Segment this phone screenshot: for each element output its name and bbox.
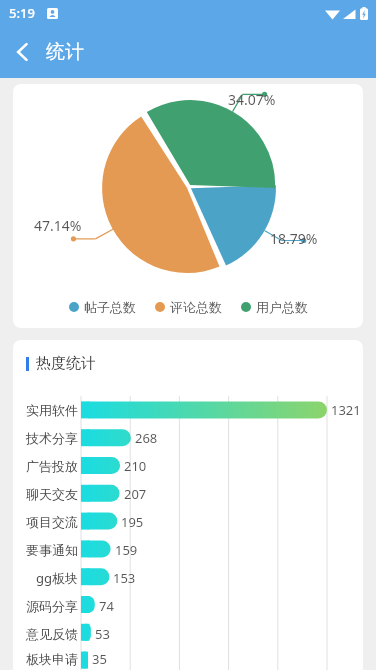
staticText: 用户总数 (256, 299, 308, 315)
button[interactable]: 用户总数 (239, 297, 310, 317)
staticText: 热度统计 (36, 354, 96, 373)
staticText: 帖子总数 (84, 299, 136, 315)
staticText: 53 (95, 625, 110, 643)
staticText: 要事通知 (13, 542, 78, 558)
staticText: 18.79% (270, 229, 318, 248)
staticText: 34.07% (228, 90, 276, 109)
staticText: 源码分享 (13, 598, 78, 614)
staticText: 47.14% (34, 216, 82, 235)
other: Wi-Fi (325, 8, 340, 20)
staticText: 实用软件 (13, 402, 78, 418)
other: App notification (47, 8, 58, 19)
button[interactable]: Back (0, 29, 46, 75)
staticText: 268 (135, 429, 158, 447)
staticText: 项目交流 (13, 514, 78, 530)
staticText: 195 (121, 513, 144, 531)
staticText: 意见反馈 (13, 626, 78, 642)
staticText: 广告投放 (13, 458, 78, 474)
staticText: 1321 (331, 401, 361, 419)
staticText: 技术分享 (13, 430, 78, 446)
staticText: 35 (92, 650, 107, 668)
button[interactable]: 评论总数 (153, 297, 224, 317)
staticText: 159 (115, 541, 138, 559)
button[interactable]: 帖子总数 (67, 297, 138, 317)
staticText: 153 (113, 569, 136, 587)
other: Signal (343, 8, 356, 20)
staticText: 207 (124, 485, 147, 503)
staticText: 聊天交友 (13, 486, 78, 502)
staticText: 统计 (46, 40, 84, 64)
staticText: gg板块 (13, 569, 78, 587)
staticText: 210 (124, 457, 147, 475)
staticText: 5:19 (9, 4, 35, 22)
staticText: 板块申请 (13, 651, 78, 667)
staticText: 评论总数 (170, 299, 222, 315)
staticText: 74 (99, 597, 114, 615)
other: Battery charging (360, 7, 368, 20)
